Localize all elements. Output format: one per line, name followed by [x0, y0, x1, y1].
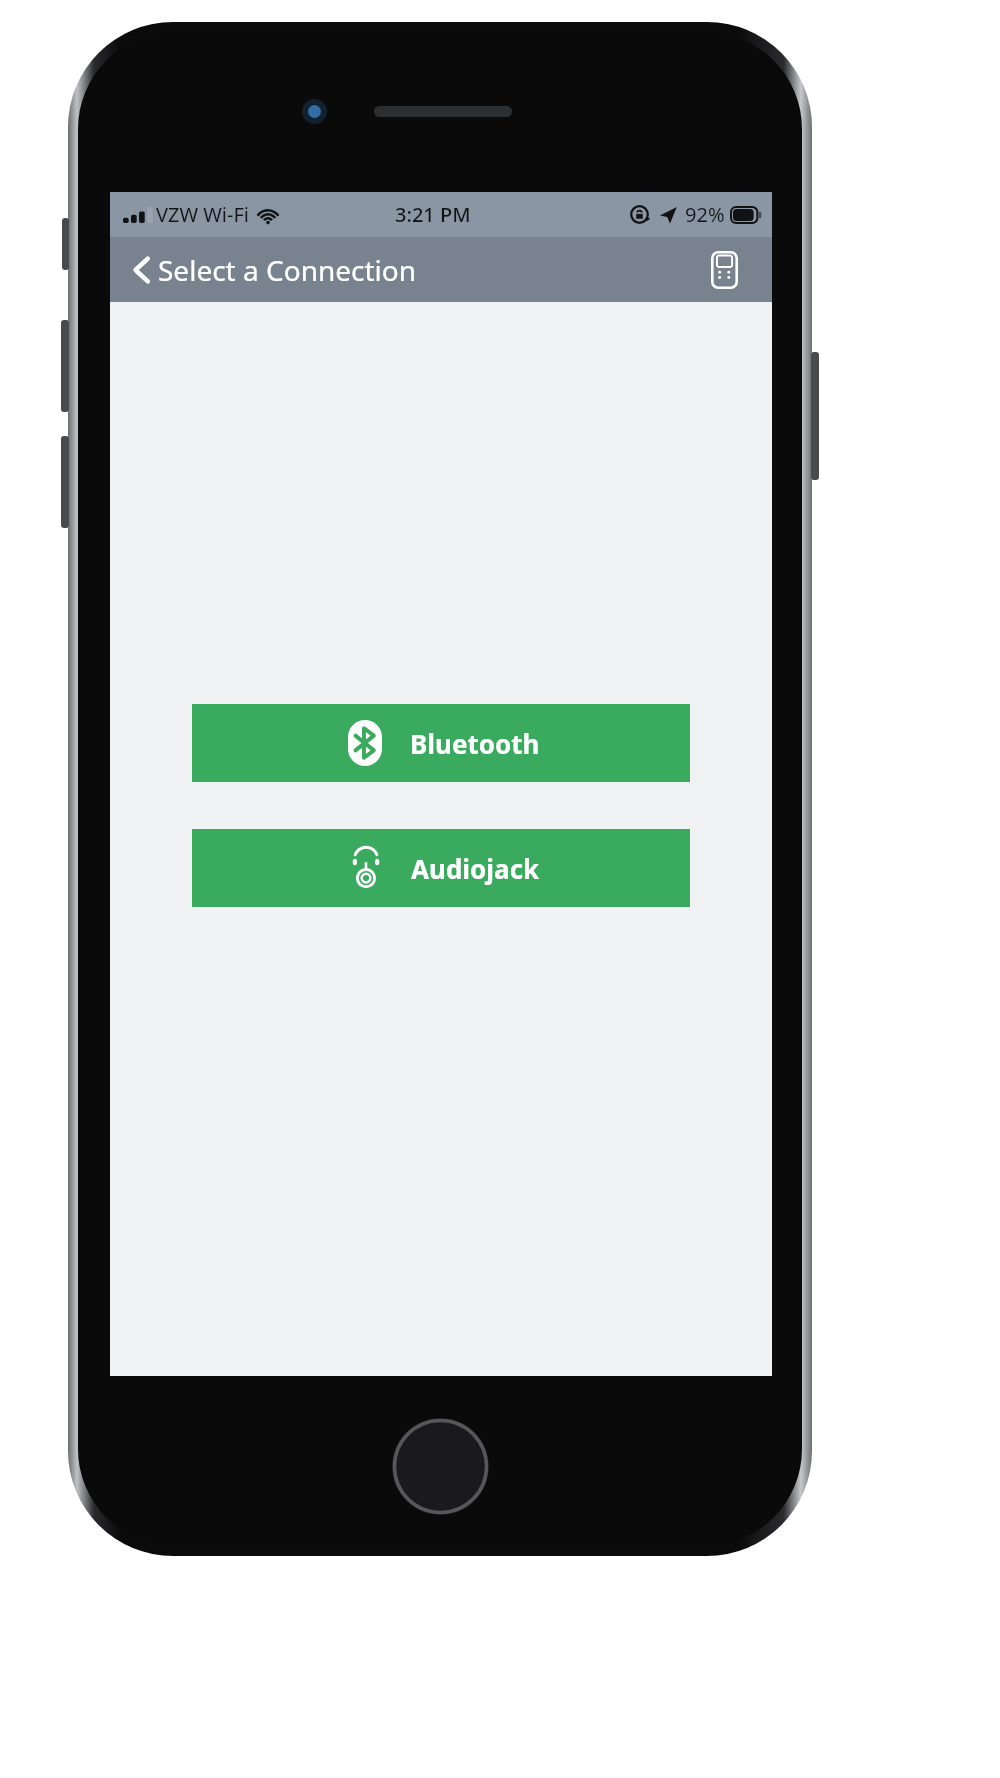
button[interactable]: Select a Connection	[134, 251, 417, 289]
button[interactable]: Bluetooth	[192, 704, 690, 782]
staticText: Select a Connection	[158, 251, 417, 289]
staticText: 92%	[685, 201, 725, 228]
button[interactable]: Audiojack	[192, 829, 690, 907]
button[interactable]: Device	[702, 248, 746, 292]
staticText: Audiojack	[411, 851, 540, 886]
staticText: Bluetooth	[410, 726, 540, 761]
staticText: 3:21 PM	[395, 201, 471, 228]
staticText: VZW Wi-Fi	[156, 201, 249, 228]
